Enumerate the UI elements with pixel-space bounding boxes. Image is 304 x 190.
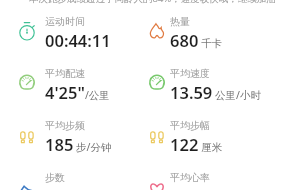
staticText: 平均心率 [170, 171, 210, 184]
staticText: 680 千卡 [170, 29, 223, 51]
button[interactable] [140, 168, 280, 190]
staticText: 平均步频 [45, 119, 85, 132]
button[interactable] [8, 116, 148, 160]
staticText: 平均速度 [170, 67, 210, 80]
staticText: 4'25"/公里 [45, 81, 110, 103]
button[interactable] [140, 12, 280, 56]
button[interactable] [8, 12, 148, 56]
staticText: 本次跑步成绩超过了同龄人的84%，速度较快哦，继续加油 [29, 0, 276, 5]
staticText: 平均配速 [45, 67, 85, 80]
button[interactable] [8, 168, 148, 190]
staticText: 运动时间 [45, 15, 85, 28]
staticText: 122 厘米 [170, 133, 223, 155]
button[interactable] [140, 116, 280, 160]
button[interactable] [140, 64, 280, 108]
staticText: 热量 [170, 15, 190, 28]
button[interactable] [8, 64, 148, 108]
staticText: 185 步/分钟 [45, 133, 112, 155]
staticText: 平均步幅 [170, 119, 210, 132]
staticText: 00:44:11 [45, 29, 111, 51]
staticText: 13.59 公里/小时 [170, 81, 261, 103]
staticText: 步数 [45, 171, 65, 184]
